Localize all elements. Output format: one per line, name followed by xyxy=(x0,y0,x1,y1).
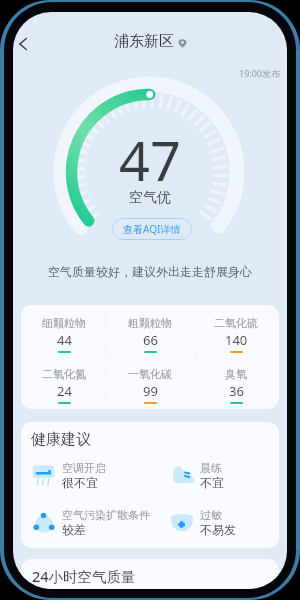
button[interactable]: 晨练 xyxy=(170,461,279,489)
staticText: 24小时空气质量 xyxy=(32,566,136,586)
staticText: 二氧化硫 xyxy=(214,316,258,330)
staticText: 66 xyxy=(143,331,158,349)
button[interactable]: 过敏 xyxy=(170,508,279,536)
staticText: 晨练 xyxy=(200,461,222,475)
staticText: 过敏 xyxy=(200,508,222,522)
staticText: 140 xyxy=(225,331,248,349)
staticText: 浦东新区 xyxy=(114,32,174,51)
staticText: 空气污染扩散条件 xyxy=(62,508,150,522)
staticText: 47 xyxy=(13,123,287,197)
staticText: 19:00发布 xyxy=(239,67,281,79)
staticText: 99 xyxy=(143,382,158,400)
staticText: 细颗粒物 xyxy=(42,316,86,330)
staticText: 空气优 xyxy=(13,189,287,207)
staticText: 查看AQI详情 xyxy=(123,222,181,236)
staticText: 空气质量较好，建议外出走走舒展身心 xyxy=(13,264,287,279)
staticText: 臭氧 xyxy=(225,367,247,381)
staticText: 二氧化氮 xyxy=(42,367,86,381)
staticText: 24 xyxy=(57,382,72,400)
staticText: 44 xyxy=(57,331,72,349)
button[interactable]: 查看AQI详情 xyxy=(112,218,192,240)
staticText: 36 xyxy=(229,382,244,400)
staticText: 一氧化碳 xyxy=(128,367,172,381)
button[interactable]: 空调开启 xyxy=(32,461,157,489)
staticText: 空调开启 xyxy=(62,461,106,475)
button[interactable]: 空气污染扩散条件 xyxy=(32,508,157,536)
staticText: 很不宜 xyxy=(62,475,98,490)
staticText: 较差 xyxy=(62,522,86,537)
staticText: 健康建议 xyxy=(31,430,91,449)
staticText: 不宜 xyxy=(200,475,224,490)
staticText: 不易发 xyxy=(200,522,236,537)
staticText: 粗颗粒物 xyxy=(128,316,172,330)
button[interactable]: Back xyxy=(13,32,37,56)
